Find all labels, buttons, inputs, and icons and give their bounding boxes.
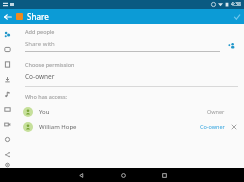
button[interactable]: Category bbox=[0, 117, 15, 132]
staticText: Choose permission bbox=[25, 61, 75, 68]
staticText: Co-owner bbox=[25, 72, 55, 81]
staticText: 4:38 bbox=[231, 1, 241, 8]
staticText: Add people bbox=[25, 28, 55, 35]
staticText: Who has access: bbox=[25, 93, 68, 100]
button[interactable]: Co-owner bbox=[200, 123, 225, 130]
button[interactable]: Category bbox=[0, 87, 15, 102]
button[interactable]: Category bbox=[0, 147, 15, 162]
button[interactable]: Recent apps bbox=[157, 168, 171, 182]
staticText: Share with bbox=[25, 40, 55, 48]
button[interactable]: Category bbox=[0, 57, 15, 72]
button[interactable]: Category bbox=[0, 102, 15, 117]
button[interactable]: Shared items bbox=[0, 27, 15, 42]
button[interactable]: Co-owner bbox=[15, 72, 244, 81]
button[interactable]: Owner bbox=[207, 108, 225, 115]
button[interactable]: William Hope bbox=[15, 119, 244, 134]
staticText: You bbox=[39, 108, 207, 116]
button[interactable]: Navigate up bbox=[0, 9, 15, 24]
staticText: Share bbox=[27, 11, 49, 22]
button[interactable]: Category bbox=[0, 132, 15, 147]
button[interactable]: Back bbox=[74, 168, 88, 182]
button[interactable]: Remove William Hope bbox=[230, 123, 238, 131]
button[interactable]: Add from contacts bbox=[226, 40, 238, 52]
button[interactable]: Category bbox=[0, 162, 15, 168]
button[interactable]: Home bbox=[116, 168, 130, 182]
button[interactable]: Done bbox=[229, 9, 244, 24]
button[interactable]: You bbox=[15, 104, 244, 119]
button[interactable]: Category bbox=[0, 42, 15, 57]
staticText: William Hope bbox=[39, 123, 200, 131]
button[interactable]: Share with bbox=[25, 40, 220, 52]
button[interactable]: Category bbox=[0, 72, 15, 87]
